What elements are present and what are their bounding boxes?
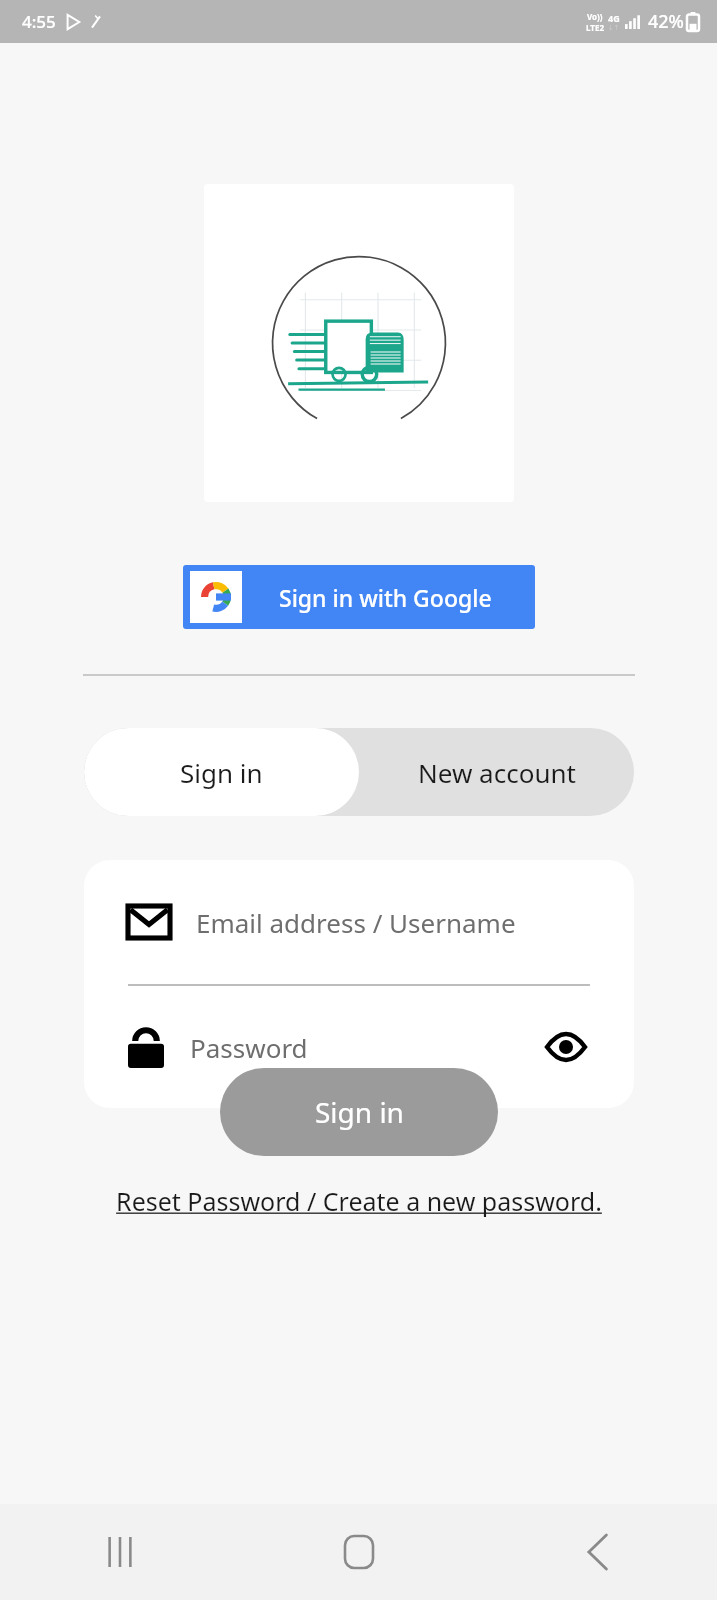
staticText: Sign in with Google (279, 582, 492, 613)
staticText: Reset Password / Create a new password. (116, 1184, 602, 1218)
button[interactable]: Sign in with Google (183, 565, 535, 629)
button[interactable]: Sign in (220, 1068, 498, 1156)
staticText: ↓↑ (608, 24, 620, 32)
other: Password (128, 1026, 164, 1068)
button[interactable]: Reset Password / Create a new password. (110, 1180, 608, 1222)
staticText: 4G (608, 12, 620, 24)
other: Email (128, 906, 170, 938)
staticText: New account (418, 755, 576, 790)
button[interactable]: Sign in (84, 728, 359, 816)
staticText: LTE2 (586, 22, 604, 33)
button[interactable]: New account (359, 728, 634, 816)
button[interactable]: Recents (0, 1504, 239, 1600)
button[interactable]: Show password (542, 1023, 590, 1071)
button[interactable]: Password (84, 986, 634, 1108)
button[interactable]: Home (239, 1504, 478, 1600)
staticText: 4:55 (22, 10, 56, 33)
staticText: Sign in (180, 755, 263, 790)
button[interactable]: Back (478, 1504, 717, 1600)
staticText: Password (190, 1030, 308, 1065)
staticText: Sign in (315, 1093, 404, 1131)
staticText: 42% (648, 9, 684, 34)
staticText: Email address / Username (196, 905, 516, 940)
staticText: Vo)) (587, 11, 603, 22)
button[interactable]: Email (84, 860, 634, 984)
